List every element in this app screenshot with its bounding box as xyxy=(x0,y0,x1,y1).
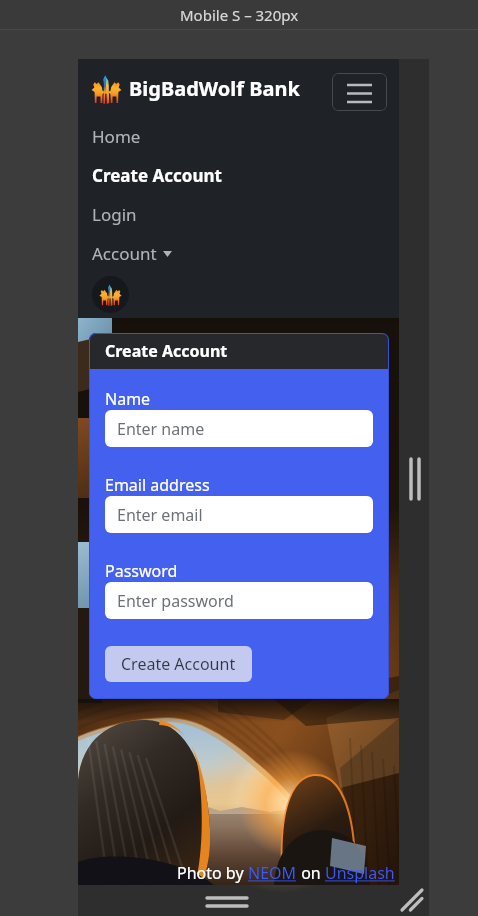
staticText: Enter email xyxy=(117,504,203,526)
staticText: on xyxy=(297,862,325,884)
staticText: Photo by xyxy=(177,862,248,884)
button[interactable]: Enter email xyxy=(105,496,373,533)
staticText: BigBadWolf Bank xyxy=(129,75,300,102)
button[interactable]: Profile xyxy=(92,276,129,313)
button[interactable]: Enter password xyxy=(105,582,373,619)
button[interactable]: Account xyxy=(78,234,399,273)
staticText: Email address xyxy=(105,474,210,496)
button[interactable]: Login xyxy=(78,195,399,234)
button[interactable]: Unsplash xyxy=(325,862,395,884)
staticText: Create Account xyxy=(92,164,222,187)
button[interactable]: Toggle navigation xyxy=(332,73,387,111)
staticText: Create Account xyxy=(105,340,228,362)
button[interactable]: Create Account xyxy=(78,156,399,195)
staticText: Account xyxy=(92,242,157,265)
staticText: Create Account xyxy=(121,653,236,675)
staticText: Password xyxy=(105,560,178,582)
staticText: Enter password xyxy=(117,590,234,612)
button[interactable]: Create Account xyxy=(105,646,252,682)
button[interactable]: Enter name xyxy=(105,410,373,447)
staticText: Login xyxy=(92,203,137,226)
staticText: Name xyxy=(105,388,151,410)
staticText: Mobile S – 320px xyxy=(180,5,299,25)
button[interactable]: BigBadWolf Bank xyxy=(91,73,300,104)
button[interactable]: Home xyxy=(78,117,399,156)
button[interactable]: NEOM xyxy=(248,862,297,884)
staticText: Enter name xyxy=(117,418,205,440)
staticText: Home xyxy=(92,125,141,148)
